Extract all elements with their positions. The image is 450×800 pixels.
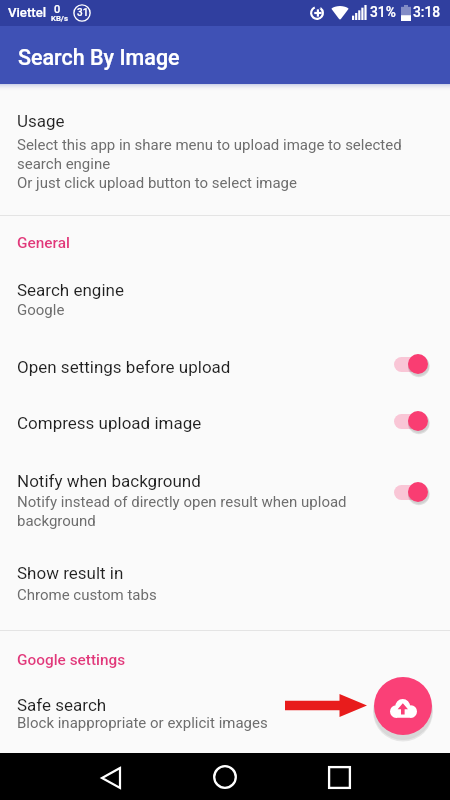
staticText: Compress upload image: [17, 412, 202, 434]
staticText: Google: [17, 300, 65, 319]
staticText: Notify when background: [17, 470, 201, 492]
button[interactable]: Toggle: [388, 403, 436, 439]
button[interactable]: Upload image: [374, 677, 432, 735]
button[interactable]: Toggle: [388, 474, 436, 510]
staticText: KB/s: [51, 13, 68, 23]
staticText: Search By Image: [18, 43, 180, 71]
button[interactable]: [0, 97, 450, 212]
staticText: 31: [77, 6, 89, 19]
button[interactable]: [0, 551, 450, 607]
staticText: Or just click upload button to select im…: [17, 173, 297, 192]
staticText: 3:18: [413, 3, 441, 21]
staticText: Safe search: [17, 694, 107, 716]
staticText: Select this app in share menu to upload …: [17, 135, 417, 173]
staticText: Chrome custom tabs: [17, 585, 157, 604]
button[interactable]: [0, 455, 450, 530]
staticText: Usage: [17, 110, 65, 132]
staticText: 31%: [370, 3, 396, 21]
staticText: Open settings before upload: [17, 356, 231, 378]
button[interactable]: [0, 396, 450, 446]
button[interactable]: Home: [203, 755, 247, 799]
staticText: Viettel: [8, 4, 47, 21]
staticText: Notify instead of directly open result w…: [17, 492, 367, 530]
button[interactable]: Toggle: [388, 346, 436, 382]
button[interactable]: [0, 339, 450, 389]
staticText: Show result in: [17, 562, 124, 584]
staticText: 0: [54, 2, 61, 16]
staticText: Search engine: [17, 279, 124, 301]
button[interactable]: Back: [89, 756, 133, 800]
button[interactable]: [0, 268, 450, 324]
staticText: General: [17, 232, 70, 252]
staticText: Google settings: [17, 649, 126, 669]
button[interactable]: Recents: [317, 755, 361, 799]
staticText: Block inappropriate or explicit images: [17, 713, 268, 732]
button[interactable]: [0, 684, 450, 740]
